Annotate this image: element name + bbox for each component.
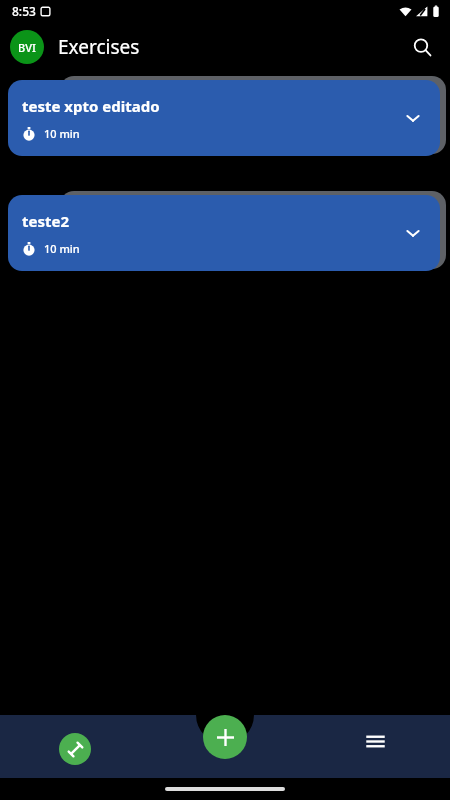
button[interactable]: Exercises xyxy=(0,733,150,778)
button[interactable]: Add xyxy=(203,715,247,759)
button[interactable]: Search xyxy=(404,29,440,65)
staticText: BVI xyxy=(18,40,36,55)
button[interactable]: teste2 xyxy=(8,195,440,271)
button[interactable]: Expand xyxy=(398,218,428,248)
button[interactable]: Menu xyxy=(300,733,450,778)
staticText: teste2 xyxy=(22,211,70,231)
staticText: 10 min xyxy=(44,241,80,256)
staticText: Exercises xyxy=(58,34,140,60)
staticText: teste xpto editado xyxy=(22,96,160,116)
button[interactable]: teste xpto editado xyxy=(8,80,440,156)
button[interactable]: Expand xyxy=(398,103,428,133)
staticText: 8:53 xyxy=(12,3,36,19)
button[interactable]: Profile xyxy=(10,30,44,64)
button[interactable]: Routines xyxy=(150,733,300,778)
staticText: 10 min xyxy=(44,126,80,141)
